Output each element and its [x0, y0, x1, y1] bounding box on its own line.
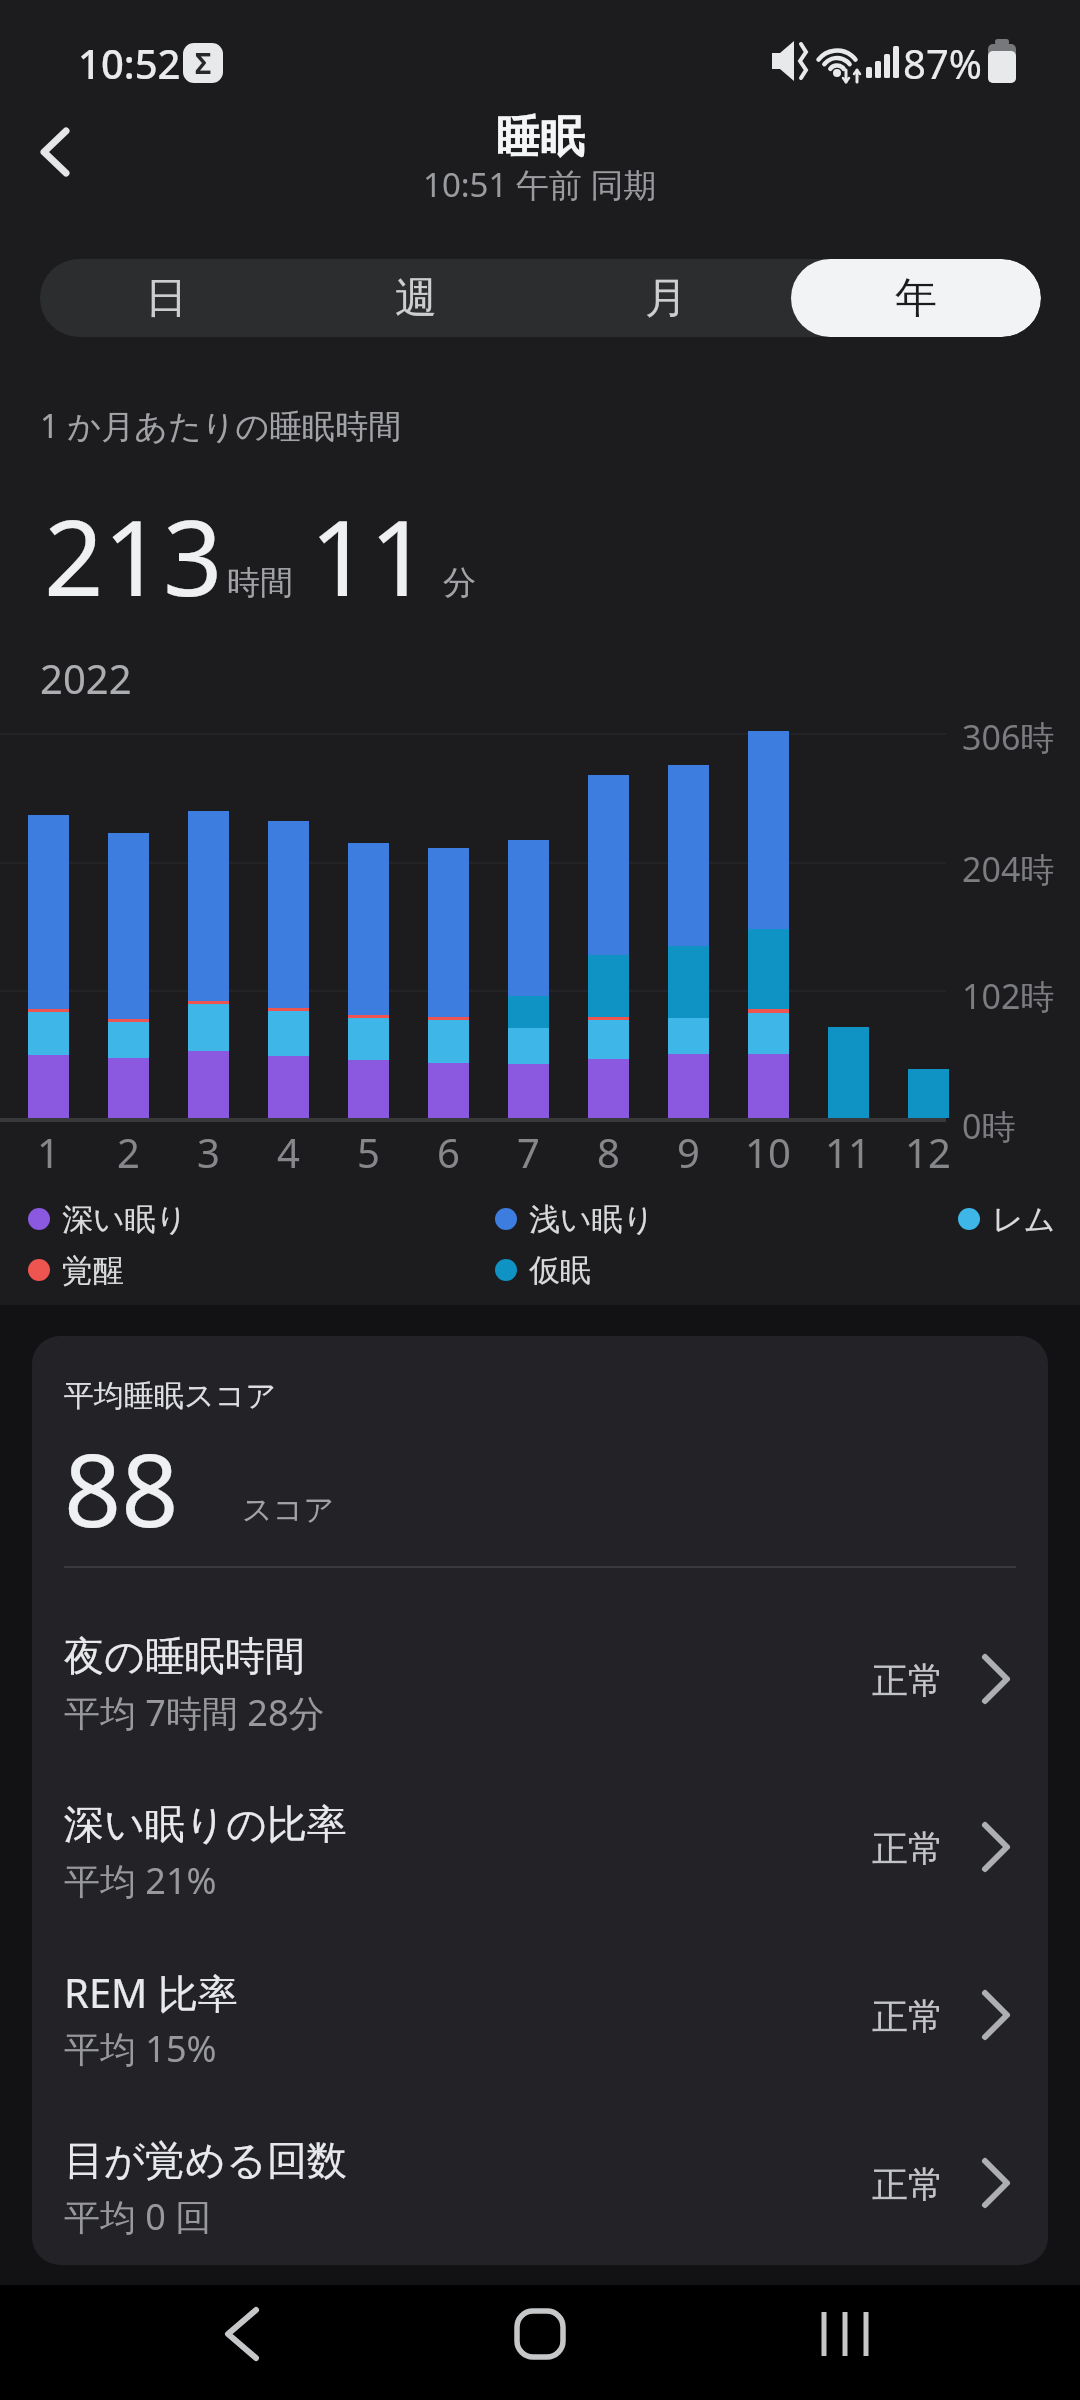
button[interactable]	[480, 2290, 600, 2395]
staticText: 月	[645, 272, 687, 325]
staticText: 4	[277, 1125, 300, 1179]
staticText: 分	[443, 562, 476, 604]
staticText: 平均睡眠スコア	[64, 1377, 277, 1415]
staticText: 平均 15%	[64, 2024, 217, 2073]
staticText: 11	[310, 485, 429, 627]
staticText: 11	[825, 1125, 871, 1179]
staticText: 浅い眠り	[529, 1200, 655, 1239]
staticText: 正常	[872, 1994, 944, 2039]
button[interactable]: 年	[791, 259, 1041, 337]
button[interactable]	[32, 1930, 1048, 2090]
button[interactable]: 月	[541, 259, 791, 337]
staticText: 102時	[962, 973, 1055, 1019]
staticText: 正常	[872, 1658, 944, 1703]
staticText: REM 比率	[64, 1965, 238, 2020]
button[interactable]	[785, 2290, 905, 2395]
staticText: 深い眠り	[62, 1200, 188, 1239]
staticText: 3	[197, 1125, 220, 1179]
staticText: 5	[357, 1125, 380, 1179]
staticText: 87%	[903, 36, 982, 90]
staticText: 週	[395, 272, 437, 325]
staticText: 夜の睡眠時間	[64, 1631, 305, 1681]
staticText: 0時	[962, 1103, 1016, 1149]
staticText: 10	[745, 1125, 791, 1179]
staticText: 平均 7時間 28分	[64, 1688, 325, 1737]
staticText: 213	[44, 485, 223, 627]
button[interactable]: 週	[291, 259, 541, 337]
staticText: スコア	[242, 1491, 335, 1529]
staticText: 1	[37, 1125, 60, 1179]
staticText: 2022	[40, 651, 132, 705]
button[interactable]	[180, 2290, 300, 2395]
staticText: 平均 0 回	[64, 2192, 212, 2241]
staticText: 日	[145, 272, 187, 325]
staticText: 睡眠	[496, 110, 584, 165]
staticText: 覚醒	[62, 1251, 124, 1290]
button[interactable]	[32, 1594, 1048, 1754]
staticText: 深い眠りの比率	[64, 1799, 347, 1849]
staticText: 2	[117, 1125, 140, 1179]
staticText: 1 か月あたりの睡眠時間	[40, 403, 402, 448]
staticText: 9	[677, 1125, 700, 1179]
button[interactable]	[20, 116, 92, 188]
button[interactable]: 日	[40, 259, 291, 337]
staticText: 仮眠	[529, 1251, 591, 1290]
staticText: 204時	[962, 846, 1055, 892]
staticText: 正常	[872, 1826, 944, 1871]
staticText: Σ	[195, 44, 212, 82]
staticText: 88	[64, 1420, 179, 1556]
button[interactable]	[32, 2098, 1048, 2258]
staticText: 306時	[962, 714, 1055, 760]
staticText: 12	[905, 1125, 951, 1179]
staticText: 10:51 午前 同期	[423, 162, 657, 207]
staticText: 6	[437, 1125, 460, 1179]
staticText: レム	[992, 1200, 1056, 1239]
staticText: 10:52	[78, 36, 181, 90]
staticText: 時間	[227, 562, 293, 604]
staticText: 8	[597, 1125, 620, 1179]
button[interactable]	[32, 1762, 1048, 1922]
staticText: 正常	[872, 2162, 944, 2207]
staticText: 7	[517, 1125, 540, 1179]
staticText: 平均 21%	[64, 1856, 217, 1905]
staticText: 目が覚める回数	[64, 2135, 347, 2185]
staticText: 年	[895, 272, 937, 325]
